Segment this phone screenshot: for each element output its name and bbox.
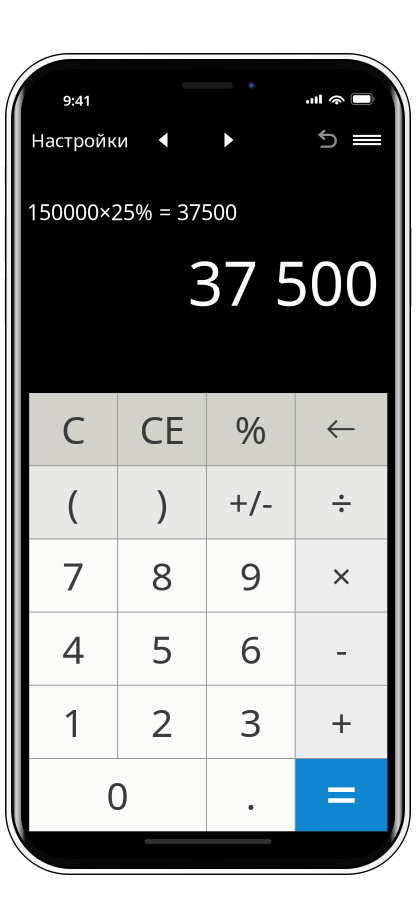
staticText: ÷ bbox=[330, 477, 352, 528]
button[interactable]: Настройки bbox=[31, 122, 231, 158]
staticText: Настройки bbox=[31, 128, 129, 152]
button[interactable]: Backspace bbox=[296, 393, 387, 465]
staticText: 3 bbox=[240, 696, 262, 747]
button[interactable]: 8 bbox=[118, 539, 206, 612]
staticText: 150000×25% = 37500 bbox=[27, 198, 237, 226]
button[interactable]: 9 bbox=[207, 539, 295, 612]
staticText: 9 bbox=[240, 550, 262, 601]
staticText: 0 bbox=[107, 769, 129, 821]
staticText: . bbox=[246, 769, 256, 821]
button[interactable]: Next bbox=[210, 122, 248, 158]
staticText: % bbox=[235, 403, 267, 455]
button[interactable]: × bbox=[296, 539, 387, 612]
staticText: ( bbox=[67, 477, 79, 528]
button[interactable]: - bbox=[296, 613, 387, 685]
staticText: CE bbox=[139, 403, 184, 455]
button[interactable]: C bbox=[29, 393, 117, 465]
button[interactable]: 7 bbox=[29, 539, 117, 612]
button[interactable]: Previous bbox=[144, 122, 182, 158]
button[interactable]: Equals bbox=[296, 759, 387, 831]
staticText: +/- bbox=[229, 479, 273, 525]
staticText: - bbox=[335, 623, 347, 674]
staticText: 2 bbox=[151, 696, 173, 747]
button[interactable]: 0 bbox=[29, 759, 206, 831]
staticText: 1 bbox=[62, 696, 84, 747]
button[interactable]: ( bbox=[29, 466, 117, 538]
button[interactable]: % bbox=[207, 393, 295, 465]
button[interactable]: +/- bbox=[207, 466, 295, 538]
staticText: 8 bbox=[151, 550, 173, 601]
staticText: × bbox=[331, 552, 351, 598]
staticText: ) bbox=[156, 477, 168, 528]
button[interactable]: + bbox=[296, 686, 387, 758]
staticText: 6 bbox=[240, 623, 262, 674]
button[interactable]: 6 bbox=[207, 613, 295, 685]
staticText: 5 bbox=[151, 623, 173, 674]
button[interactable]: Menu bbox=[349, 122, 385, 158]
button[interactable]: . bbox=[207, 759, 295, 831]
button[interactable]: 3 bbox=[207, 686, 295, 758]
button[interactable]: CE bbox=[118, 393, 206, 465]
staticText: + bbox=[330, 696, 352, 747]
button[interactable]: Undo bbox=[311, 122, 345, 158]
button[interactable]: 4 bbox=[29, 613, 117, 685]
button[interactable]: ÷ bbox=[296, 466, 387, 538]
button[interactable]: 2 bbox=[118, 686, 206, 758]
staticText: 4 bbox=[62, 623, 84, 674]
staticText: 37 500 bbox=[188, 241, 379, 323]
button[interactable]: ) bbox=[118, 466, 206, 538]
staticText: 7 bbox=[62, 550, 84, 601]
staticText: C bbox=[61, 403, 85, 455]
button[interactable]: 5 bbox=[118, 613, 206, 685]
staticText: 9:41 bbox=[63, 90, 91, 110]
button[interactable]: 1 bbox=[29, 686, 117, 758]
